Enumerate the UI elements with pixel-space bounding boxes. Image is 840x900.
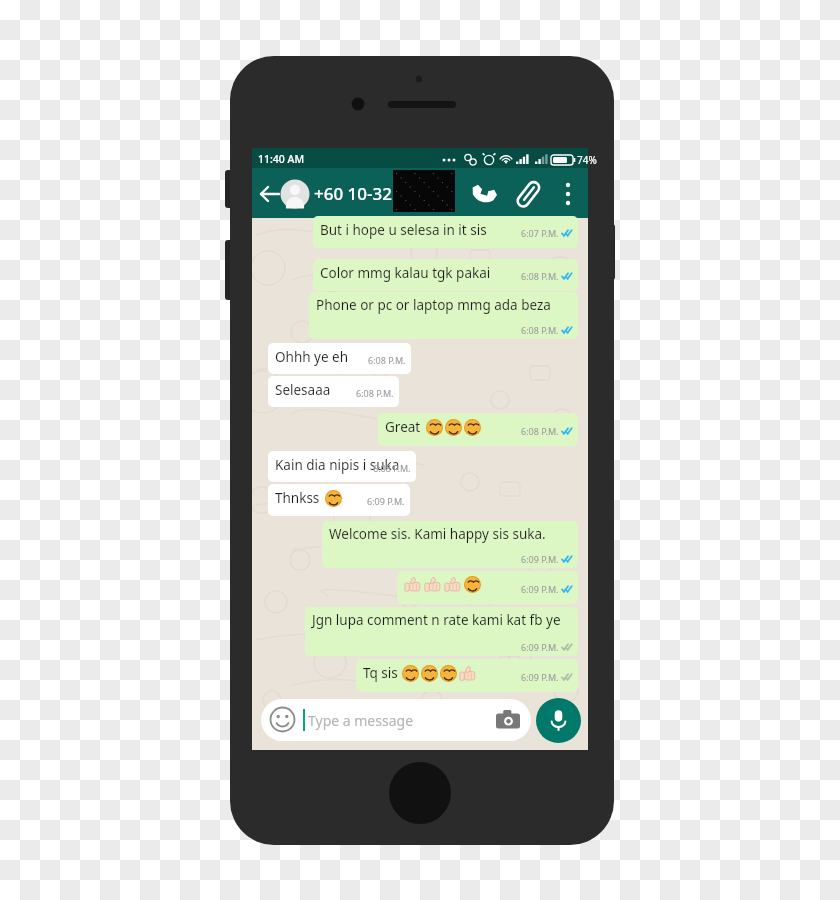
staticText: 6:09 P.M.	[521, 553, 559, 565]
staticText: 6:08 P.M.	[356, 387, 394, 399]
button[interactable]: Tq sis	[356, 659, 578, 692]
button[interactable]: Record voice message	[536, 698, 581, 743]
staticText: Color mmg kalau tgk pakai	[320, 264, 491, 282]
button[interactable]: Attach	[512, 174, 546, 214]
staticText: Kain dia nipis i suka	[275, 456, 400, 474]
staticText: 6:08 P.M.	[368, 354, 406, 366]
button[interactable]: +60 10-32	[314, 182, 392, 205]
button[interactable]: 6:09 P.M.	[397, 571, 578, 604]
button[interactable]: Welcome sis. Kami happy sis suka.	[322, 521, 578, 568]
button[interactable]: Camera	[496, 710, 520, 730]
button[interactable]: Thnkss	[268, 484, 410, 516]
staticText: Tq sis	[363, 664, 398, 682]
staticText: Jgn lupa comment n rate kami kat fb ye	[312, 611, 561, 629]
staticText: 6:07 P.M.	[521, 227, 559, 239]
staticText: 6:08 P.M.	[373, 462, 411, 474]
button[interactable]: Great	[378, 413, 578, 446]
button[interactable]: Jgn lupa comment n rate kami kat fb ye	[305, 607, 578, 656]
button[interactable]: More options	[554, 174, 584, 214]
staticText: 11:40 AM	[258, 152, 305, 166]
staticText: Thnkss	[275, 489, 320, 507]
staticText: 6:08 P.M.	[521, 324, 559, 336]
button[interactable]: Back	[258, 176, 284, 212]
button[interactable]: Voice call	[468, 174, 502, 214]
button[interactable]: Selesaaa	[268, 376, 399, 407]
staticText: 6:09 P.M.	[521, 641, 559, 653]
button[interactable]: Contact profile	[281, 176, 311, 212]
staticText: 6:08 P.M.	[521, 270, 559, 282]
staticText: Phone or pc or laptop mmg ada beza	[316, 296, 551, 314]
staticText: 6:09 P.M.	[521, 671, 559, 683]
staticText: Selesaaa	[275, 381, 331, 399]
staticText: +60 10-32	[314, 182, 392, 205]
staticText: Type a message	[308, 711, 414, 730]
staticText: Welcome sis. Kami happy sis suka.	[329, 525, 546, 543]
staticText: Ohhh ye eh	[275, 348, 349, 366]
button[interactable]: Kain dia nipis i suka	[268, 451, 416, 482]
button[interactable]	[261, 699, 531, 741]
staticText: Great	[385, 418, 421, 436]
staticText: But i hope u selesa in it sis	[320, 221, 487, 239]
staticText: 6:08 P.M.	[521, 425, 559, 437]
button[interactable]: Phone or pc or laptop mmg ada beza	[309, 292, 578, 339]
staticText: 74%	[577, 153, 597, 167]
button[interactable]: Color mmg kalau tgk pakai	[313, 259, 578, 291]
button[interactable]: Emoji	[269, 706, 296, 733]
button[interactable]: But i hope u selesa in it sis	[313, 216, 578, 248]
button[interactable]: Ohhh ye eh	[268, 343, 411, 374]
staticText: 6:09 P.M.	[521, 583, 559, 595]
staticText: 6:09 P.M.	[367, 495, 405, 507]
